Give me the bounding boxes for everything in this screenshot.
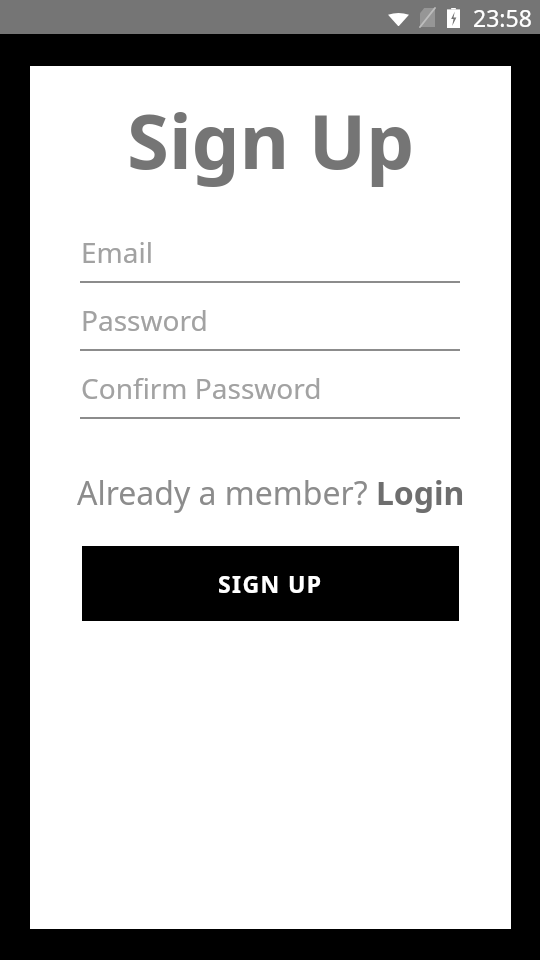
- other: No SIM card: [420, 8, 435, 27]
- staticText: Password: [81, 301, 208, 339]
- other: Wi-Fi: [388, 10, 409, 26]
- button[interactable]: Password: [80, 301, 460, 351]
- other: Battery charging: [447, 8, 460, 28]
- staticText: Confirm Password: [81, 369, 322, 407]
- staticText: Email: [81, 233, 153, 271]
- button[interactable]: Already a member? Login: [30, 466, 511, 520]
- staticText: 23:58: [473, 2, 532, 33]
- staticText: SIGN UP: [218, 568, 323, 599]
- button[interactable]: Confirm Password: [80, 369, 460, 419]
- staticText: Already a member? Login: [77, 471, 465, 515]
- staticText: Sign Up: [127, 88, 415, 188]
- button[interactable]: SIGN UP: [82, 546, 459, 621]
- button[interactable]: Email: [80, 233, 460, 283]
